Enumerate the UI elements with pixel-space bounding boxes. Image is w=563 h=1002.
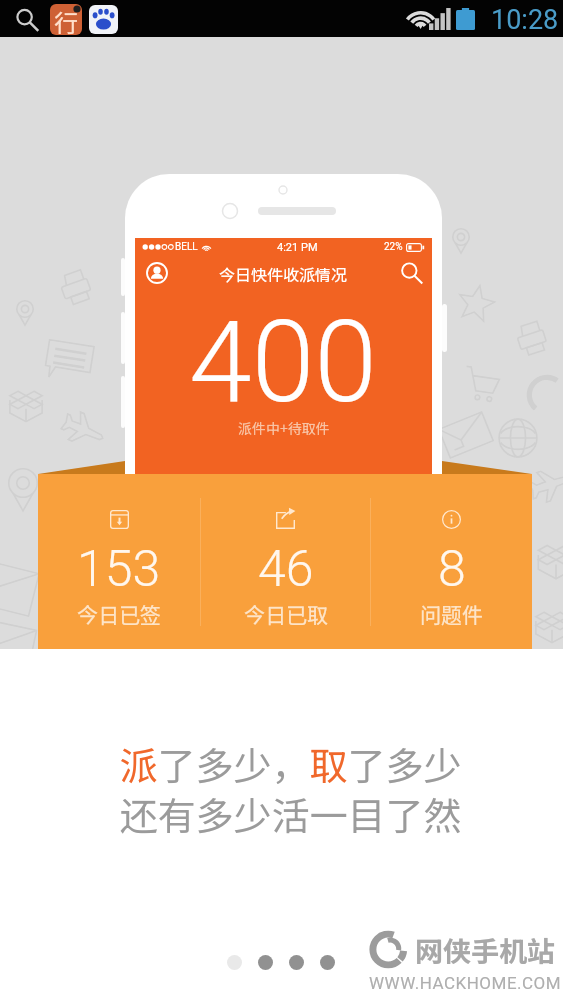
button[interactable]: Page 4: [320, 955, 335, 970]
staticText: 还有多少活一目了然: [119, 786, 462, 841]
staticText: BELL: [175, 241, 198, 253]
staticText: 今日已取: [244, 599, 328, 629]
staticText: 4:21 PM: [277, 241, 318, 254]
staticText: 46: [258, 540, 314, 599]
other: Search: [399, 261, 423, 285]
staticText: 派了多少，取了多少: [119, 736, 462, 791]
staticText: 10:28: [491, 4, 559, 36]
button[interactable]: Travel app: [50, 4, 82, 35]
button[interactable]: 今日已取: [201, 474, 370, 649]
staticText: 153: [77, 540, 161, 599]
other: Search: [15, 8, 39, 32]
staticText: 网侠手机站: [415, 930, 556, 971]
other: Profile: [146, 262, 168, 284]
staticText: 8: [438, 540, 466, 599]
staticText: 22%: [384, 241, 403, 253]
staticText: 今日已签: [77, 599, 161, 629]
button[interactable]: Baidu: [89, 5, 118, 34]
staticText: WWW.HACKHOME.COM: [369, 973, 562, 993]
button[interactable]: 问题件: [371, 474, 532, 649]
staticText: 行: [54, 4, 78, 35]
button[interactable]: Page 1: [227, 955, 242, 970]
staticText: 400: [189, 296, 378, 428]
button[interactable]: Page 2: [258, 955, 273, 970]
button[interactable]: 今日已签: [38, 474, 200, 649]
button[interactable]: Page 3: [289, 955, 304, 970]
staticText: 派件中+待取件: [238, 418, 330, 438]
staticText: 问题件: [420, 599, 483, 629]
staticText: 今日快件收派情况: [219, 262, 348, 285]
